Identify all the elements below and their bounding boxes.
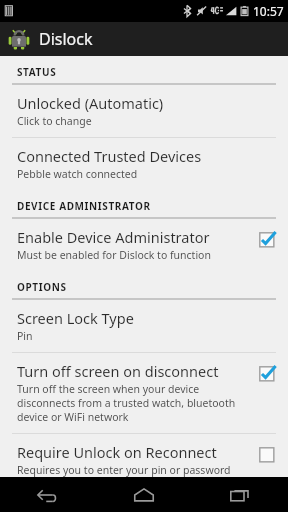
button[interactable]: Home [96, 477, 192, 512]
staticText: Turn off the screen when your device dis… [17, 382, 248, 424]
button[interactable]: Back [0, 477, 96, 512]
button[interactable]: Screen Lock Type [0, 300, 288, 352]
staticText: 10:57 [253, 3, 284, 19]
button[interactable]: Checked [256, 363, 278, 385]
staticText: Turn off screen on disconnect [17, 361, 219, 381]
button[interactable]: Turn off screen on disconnect [0, 353, 288, 433]
button[interactable]: Dislock app icon [0, 22, 288, 56]
staticText: Enable Device Administrator [17, 227, 210, 247]
staticText: Must be enabled for Dislock to function [17, 248, 211, 262]
other: Dislock app icon [8, 28, 30, 50]
staticText: Requires you to enter your pin or passwo… [17, 463, 248, 503]
staticText: Unlocked (Automatic) [17, 93, 164, 113]
staticText: Pebble watch connected [17, 167, 138, 181]
staticText: Click to change [17, 114, 92, 128]
button[interactable]: Enable Device Administrator [0, 219, 288, 271]
staticText: Require Unlock on Reconnect [17, 442, 217, 462]
staticText: Screen Lock Type [17, 308, 134, 328]
staticText: STATUS [17, 65, 57, 79]
staticText: Connected Trusted Devices [17, 146, 202, 166]
staticText: DEVICE ADMINISTRATOR [17, 199, 151, 213]
staticText: OPTIONS [17, 280, 67, 294]
staticText: Dislock [39, 28, 93, 50]
button[interactable]: Unchecked [256, 444, 278, 466]
button[interactable]: Checked [256, 229, 278, 251]
button[interactable]: Require Unlock on Reconnect [0, 434, 288, 512]
staticText: Pin [17, 329, 33, 343]
button[interactable]: Recent apps [192, 477, 288, 512]
button[interactable]: Connected Trusted Devices [0, 138, 288, 190]
button[interactable]: Unlocked (Automatic) [0, 85, 288, 137]
